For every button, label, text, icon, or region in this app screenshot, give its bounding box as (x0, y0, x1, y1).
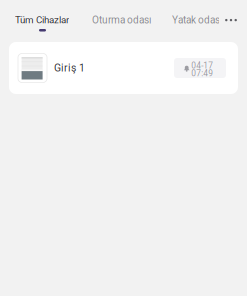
staticText: Giriş 1 (54, 62, 85, 74)
staticText: Tüm Cihazlar (15, 14, 69, 25)
staticText: 04-17 (191, 61, 213, 70)
staticText: Oturma odası (92, 14, 151, 26)
staticText: 07:49 (191, 68, 213, 78)
button[interactable]: More options (222, 13, 240, 27)
button[interactable]: Yatak odası (172, 12, 219, 34)
button[interactable]: Tüm Cihazlar (15, 12, 69, 33)
button[interactable]: Giriş 1 (9, 42, 238, 94)
button[interactable]: Oturma odası (92, 12, 151, 34)
staticText: Yatak odası (172, 14, 222, 26)
